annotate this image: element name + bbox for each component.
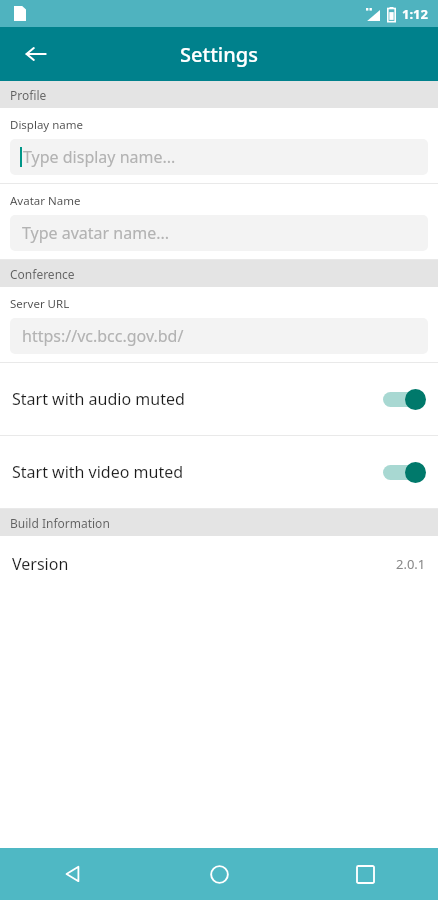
staticText: Server URL <box>10 296 70 312</box>
staticText: Type display name... <box>23 146 176 168</box>
staticText: Version <box>12 553 396 575</box>
button[interactable]: Start with video muted <box>0 436 438 508</box>
button[interactable]: Back <box>0 848 146 900</box>
staticText: Build Information <box>10 515 110 531</box>
button[interactable]: Server URL <box>0 287 438 362</box>
button[interactable]: Avatar Name <box>0 184 438 259</box>
staticText: Conference <box>10 266 75 282</box>
staticText: Display name <box>10 117 84 133</box>
staticText: 1:12 <box>402 5 428 23</box>
button[interactable]: Start with audio muted <box>0 363 438 435</box>
button[interactable]: Display name <box>0 108 438 183</box>
button[interactable]: Back <box>13 31 59 77</box>
staticText: Start with audio muted <box>12 388 380 410</box>
staticText: https://vc.bcc.gov.bd/ <box>22 325 184 347</box>
button[interactable]: Home <box>146 848 292 900</box>
staticText: Type avatar name... <box>22 222 170 244</box>
staticText: Avatar Name <box>10 193 81 209</box>
staticText: Start with video muted <box>12 461 380 483</box>
button[interactable]: Version <box>0 536 438 591</box>
staticText: Profile <box>10 87 47 103</box>
staticText: Settings <box>180 41 258 68</box>
button[interactable]: Recent apps <box>292 848 438 900</box>
staticText: 2.0.1 <box>396 555 426 573</box>
